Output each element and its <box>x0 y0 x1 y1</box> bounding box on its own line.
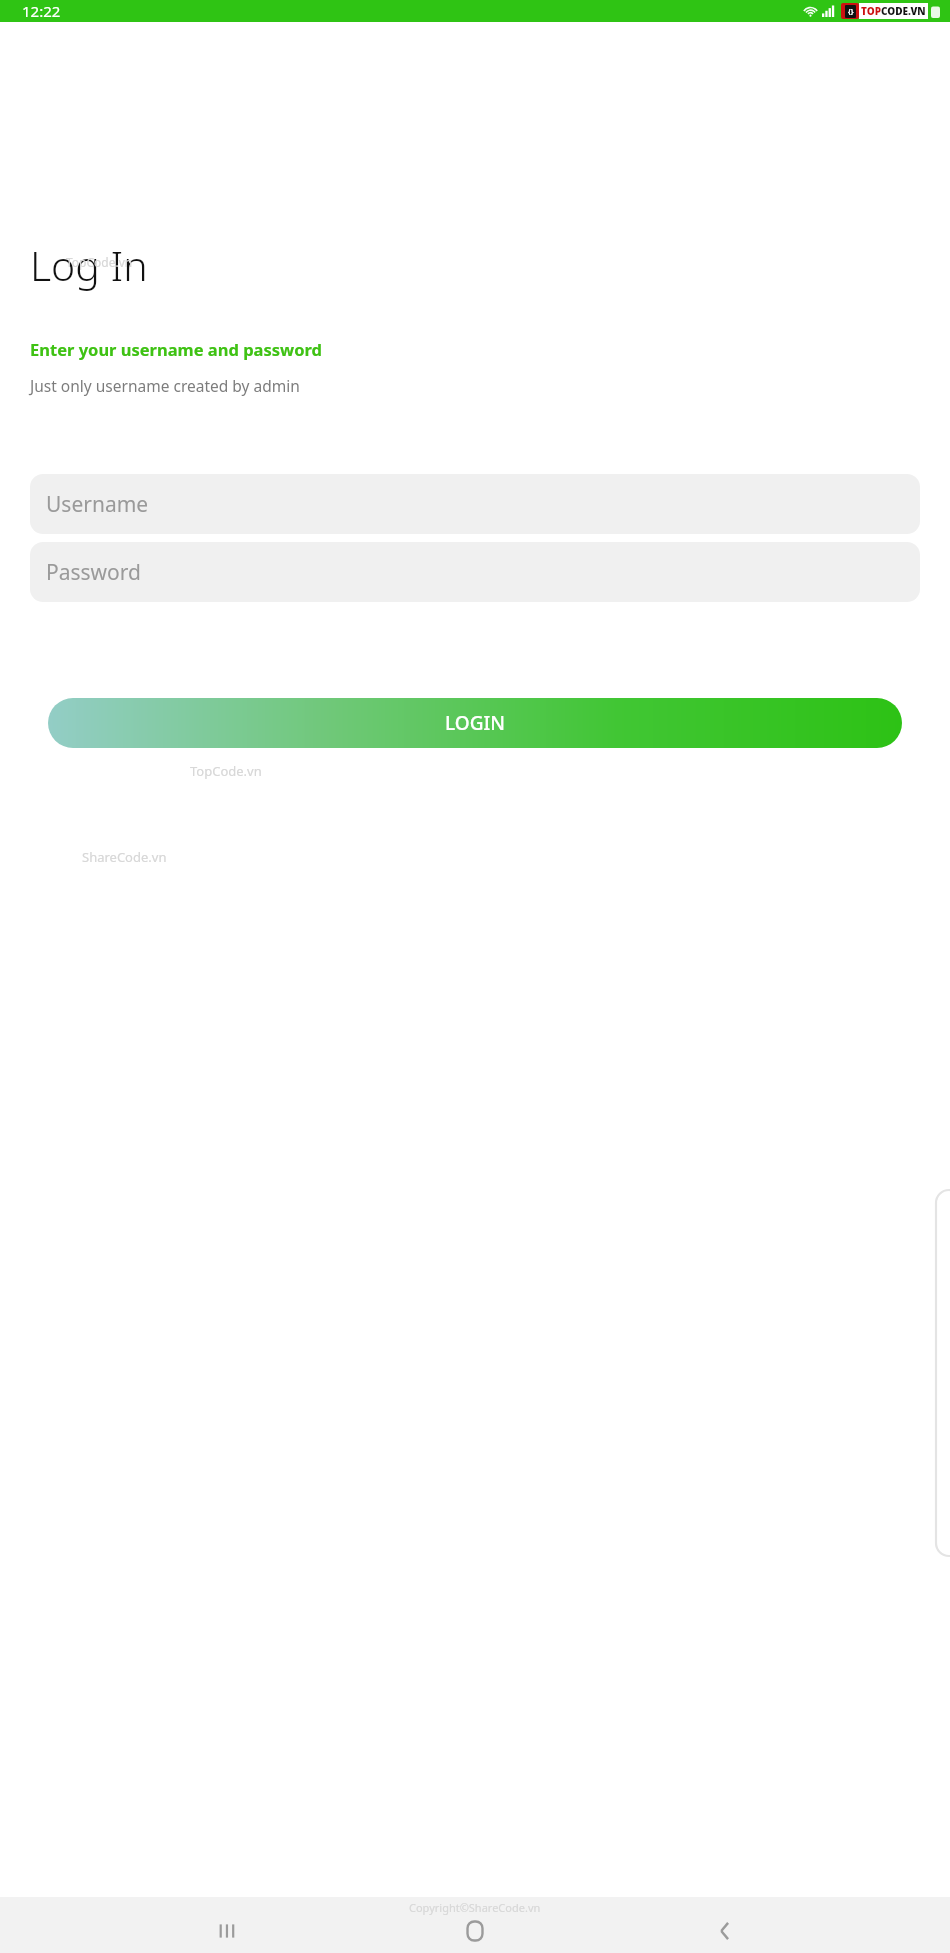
staticText: TopCode.vn <box>66 254 133 270</box>
button[interactable]: LOGIN <box>48 698 902 748</box>
staticText: Enter your username and password <box>30 338 322 360</box>
staticText: Copyright©ShareCode.vn <box>409 1900 541 1915</box>
staticText: Username <box>46 490 149 519</box>
staticText: Log In <box>30 237 148 293</box>
button[interactable]: Home <box>451 1907 499 1953</box>
button[interactable]: Password <box>30 542 920 602</box>
staticText: LOGIN <box>445 710 505 736</box>
button[interactable]: Recent apps <box>202 1907 250 1953</box>
staticText: Password <box>46 558 141 587</box>
staticText: TopCode.vn <box>190 762 262 780</box>
staticText: TOP <box>861 4 881 18</box>
button[interactable]: Back <box>701 1907 749 1953</box>
staticText: {} <box>848 7 854 17</box>
staticText: ShareCode.vn <box>82 848 167 866</box>
button[interactable]: Username <box>30 474 920 534</box>
staticText: 12:22 <box>22 1 61 21</box>
staticText: CODE.VN <box>881 4 926 18</box>
staticText: Just only username created by admin <box>30 375 300 396</box>
